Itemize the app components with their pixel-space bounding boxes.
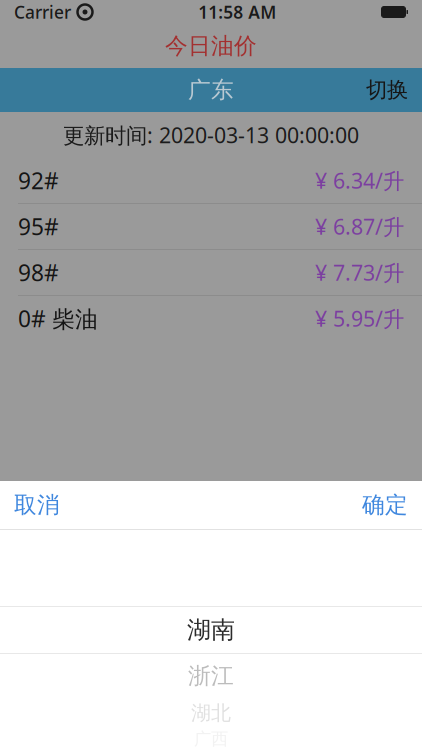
staticText: 11:58 AM — [198, 0, 276, 23]
staticText: ¥ 6.87/升 — [315, 212, 404, 241]
button[interactable]: 浙江 — [0, 654, 422, 698]
button[interactable]: 确定 — [348, 481, 422, 529]
staticText: Carrier — [14, 0, 71, 23]
staticText: 广东 — [188, 76, 234, 104]
staticText: 98# — [18, 257, 59, 287]
button[interactable]: 取消 — [0, 481, 74, 529]
button[interactable]: 湖北 — [0, 698, 422, 728]
staticText: 确定 — [362, 491, 408, 519]
staticText: 取消 — [14, 491, 60, 519]
staticText: 更新时间: 2020-03-13 00:00:00 — [63, 121, 359, 149]
staticText: ¥ 5.95/升 — [315, 304, 404, 333]
staticText: 湖北 — [191, 701, 231, 725]
staticText: 切换 — [366, 77, 408, 103]
staticText: 浙江 — [188, 662, 234, 690]
staticText: 95# — [18, 211, 59, 241]
staticText: 92# — [18, 165, 59, 195]
staticText — [71, 0, 77, 27]
staticText: 今日油价 — [165, 32, 257, 60]
staticText: 湖南 — [187, 615, 235, 645]
staticText: 0# 柴油 — [18, 303, 98, 333]
staticText: ¥ 6.34/升 — [315, 166, 404, 195]
button[interactable]: 湖南 — [0, 607, 422, 653]
staticText: 广西 — [194, 728, 228, 750]
staticText: ¥ 7.73/升 — [315, 258, 404, 287]
button[interactable]: 切换 — [352, 68, 422, 112]
